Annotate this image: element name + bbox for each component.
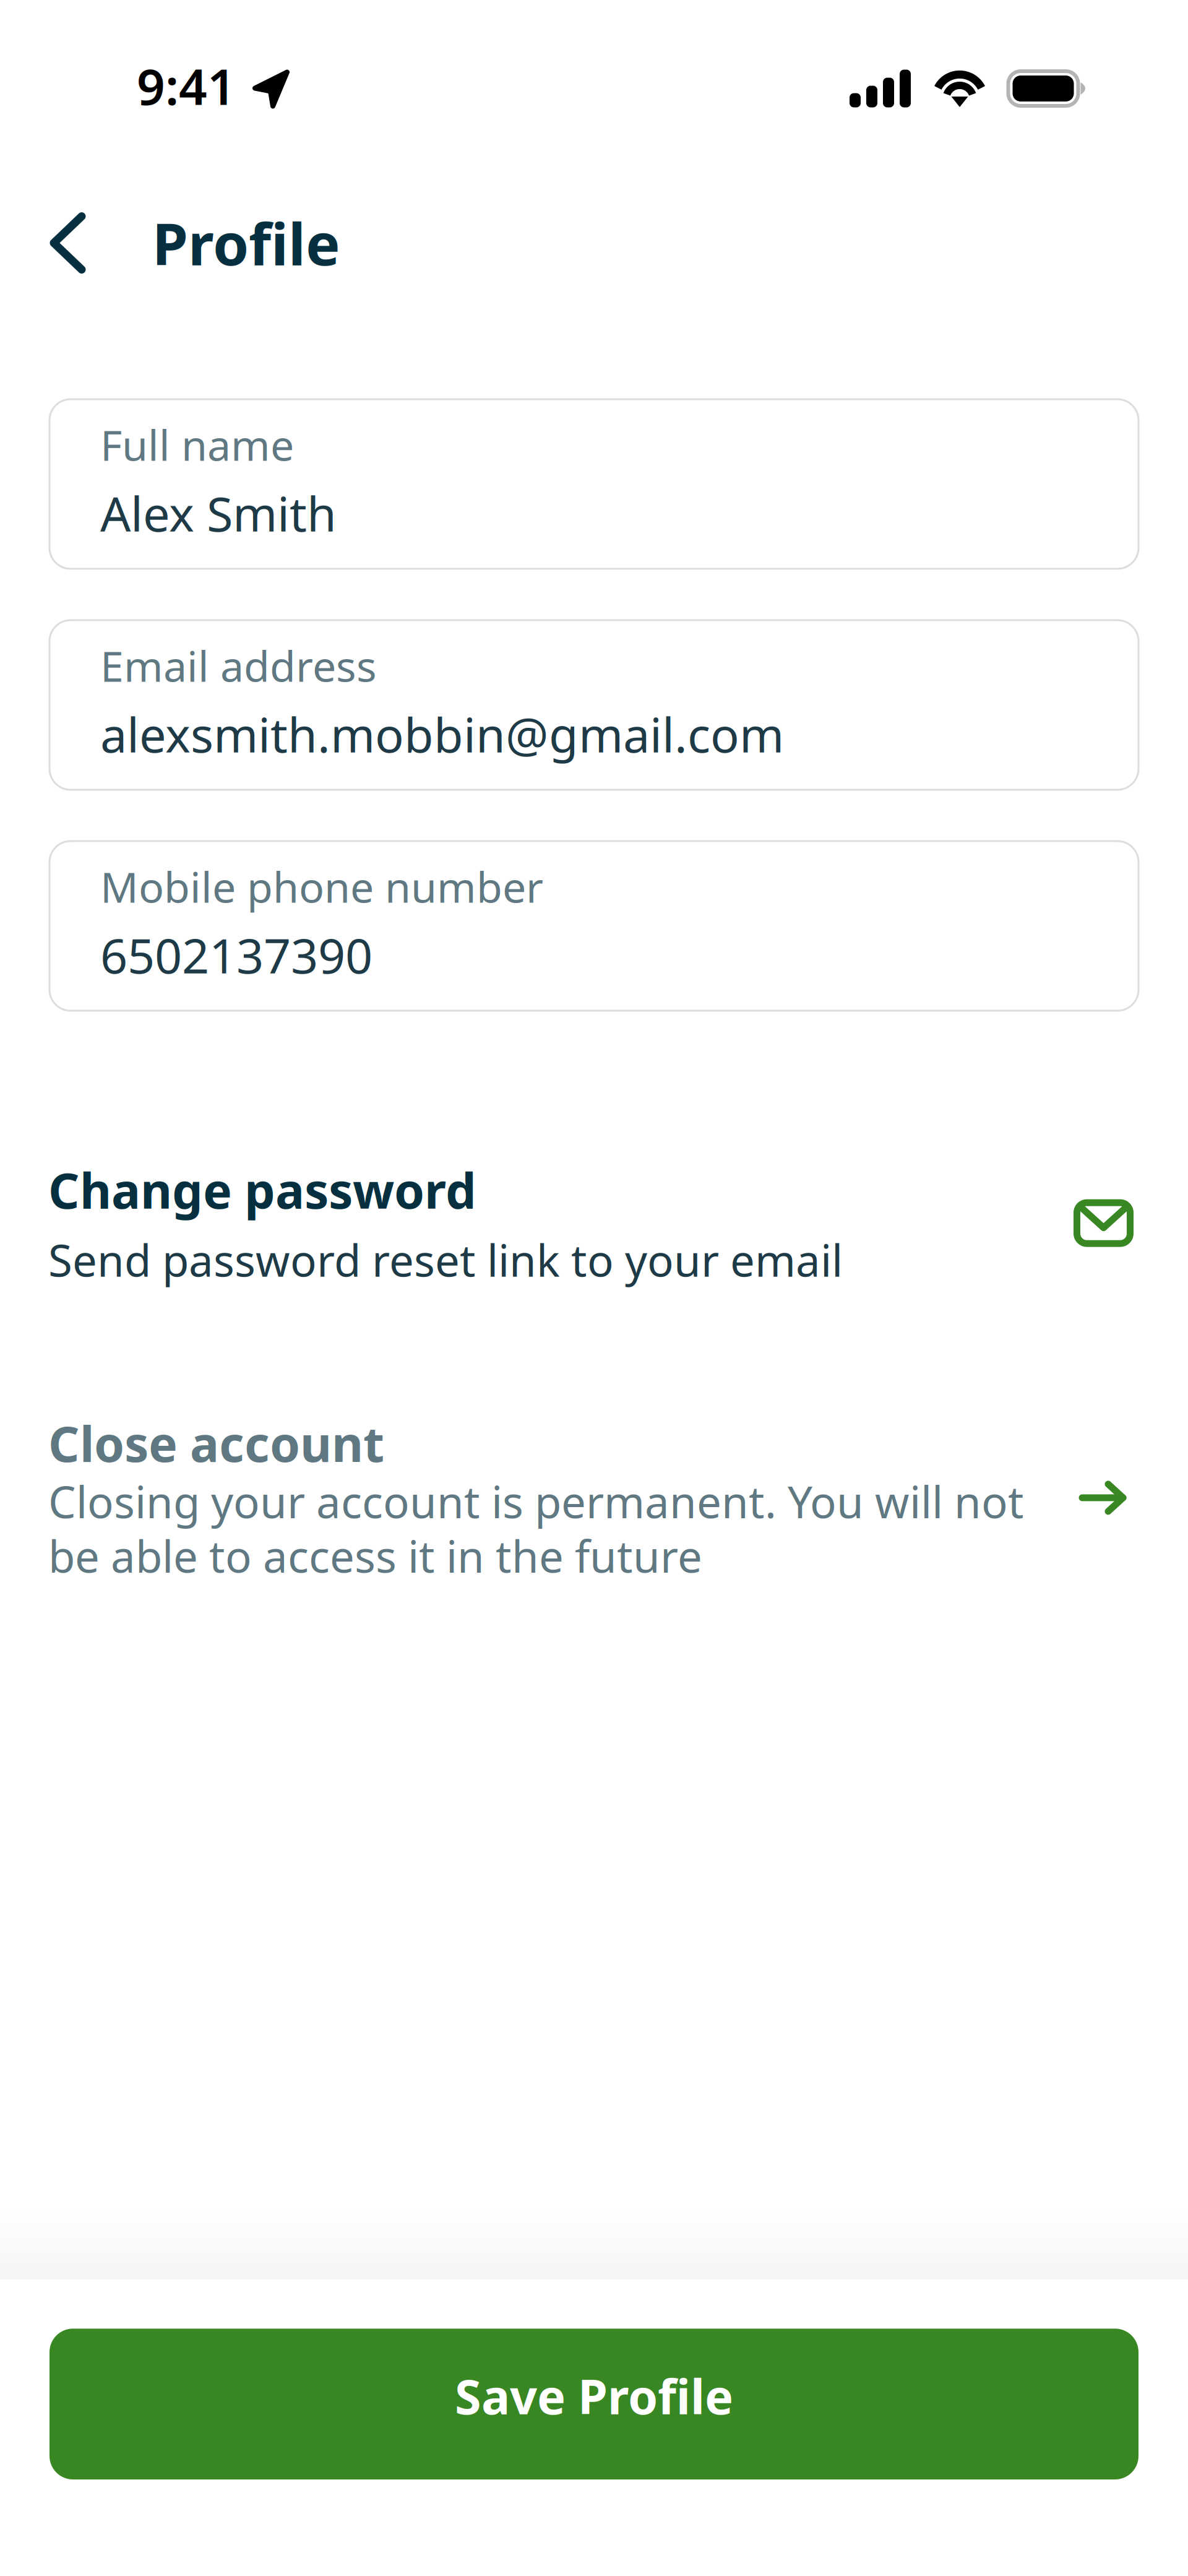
- staticText: be able to access it in the future: [48, 1527, 702, 1585]
- staticText: Alex Smith: [100, 481, 337, 545]
- staticText: 6502137390: [100, 923, 372, 987]
- button[interactable]: Save Profile: [49, 2329, 1138, 2479]
- staticText: Mobile phone number: [100, 858, 543, 914]
- staticText: alexsmith.mobbin@gmail.com: [100, 702, 784, 766]
- staticText: Send password reset link to your email: [48, 1231, 843, 1289]
- staticText: Closing your account is permanent. You w…: [48, 1472, 1024, 1530]
- staticText: Full name: [100, 417, 294, 472]
- staticText: Profile: [152, 205, 340, 281]
- staticText: Save Profile: [455, 2364, 733, 2427]
- staticText: Email address: [100, 638, 377, 693]
- button[interactable]: Change password: [0, 1157, 1188, 1289]
- staticText: Close account: [48, 1411, 384, 1475]
- staticText: Change password: [48, 1157, 476, 1222]
- staticText: 9:41: [137, 53, 236, 119]
- button[interactable]: Close account: [0, 1411, 1188, 1585]
- button[interactable]: Back: [0, 205, 152, 281]
